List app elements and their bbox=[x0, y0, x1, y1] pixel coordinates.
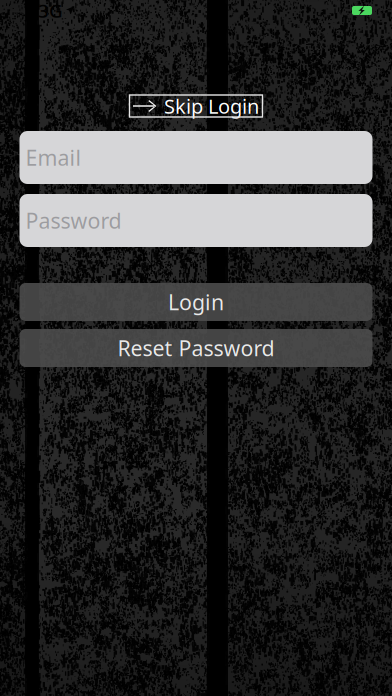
staticText: Login bbox=[168, 288, 224, 316]
staticText: Reset Password bbox=[117, 334, 274, 362]
staticText: Password bbox=[25, 206, 121, 235]
staticText: Email bbox=[25, 143, 81, 172]
staticText: Skip Login bbox=[164, 93, 259, 119]
button[interactable]: Skip Login bbox=[129, 95, 262, 117]
button[interactable]: Reset Password bbox=[19, 329, 372, 367]
button[interactable]: Login bbox=[19, 283, 372, 321]
staticText: 3G bbox=[38, 0, 63, 23]
